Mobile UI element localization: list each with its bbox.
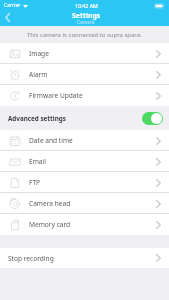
staticText: Date and time <box>29 136 73 145</box>
button[interactable]: Firmware Update <box>0 85 169 106</box>
staticText: Email <box>29 157 46 166</box>
staticText: 10:42 AM <box>75 2 98 9</box>
staticText: Firmware Update <box>29 91 83 100</box>
button[interactable]: FTP <box>0 172 169 193</box>
button[interactable]: Date and time <box>0 130 169 151</box>
staticText: FTP <box>29 178 41 187</box>
button[interactable]: Advanced settings <box>0 106 169 130</box>
staticText: Carrier <box>4 2 21 9</box>
staticText: Stop recording <box>8 254 54 263</box>
button[interactable]: Memory card <box>0 214 169 235</box>
button[interactable]: Stop recording <box>0 248 169 268</box>
staticText: Image <box>29 49 49 58</box>
button[interactable]: Advanced settings toggle <box>142 112 163 125</box>
button[interactable]: Back <box>0 10 15 25</box>
staticText: Alarm <box>29 70 48 79</box>
staticText: Advanced settings <box>8 114 66 123</box>
staticText: This camera is connected to supra space. <box>27 31 143 39</box>
button[interactable]: Camera head <box>0 193 169 214</box>
staticText: Camera <box>77 19 95 26</box>
button[interactable]: Alarm <box>0 64 169 85</box>
staticText: Camera head <box>29 199 71 208</box>
button[interactable]: Email <box>0 151 169 172</box>
button[interactable]: Image <box>0 43 169 64</box>
staticText: Settings <box>72 11 101 20</box>
staticText: Memory card <box>29 220 71 229</box>
